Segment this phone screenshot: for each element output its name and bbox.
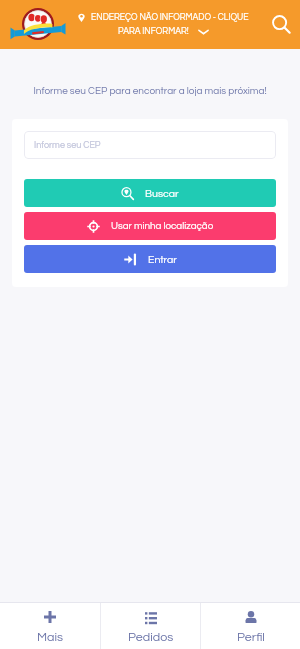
button[interactable]: Buscar [266,0,296,49]
button[interactable]: Entrar [24,245,276,273]
button[interactable]: Perfil [201,603,300,649]
button[interactable]: Buscar [24,179,276,207]
staticText: ENDEREÇO NÃO INFORMADO - CLIQUE [91,13,249,22]
staticText: Pedidos [128,631,174,644]
staticText: PARA INFORMAR! [118,27,189,36]
staticText: Perfil [237,631,265,644]
other: Dog Burger [22,8,54,40]
button[interactable]: Pedidos [101,603,200,649]
button[interactable]: Informe seu CEP [24,131,276,159]
button[interactable]: Usar minha localização [24,212,276,240]
staticText: Mais [37,631,64,644]
button[interactable]: ENDEREÇO NÃO INFORMADO - CLIQUE [78,13,249,36]
staticText: Informe seu CEP para encontrar a loja ma… [0,86,300,96]
staticText: Entrar [148,254,177,265]
staticText: Informe seu CEP [34,141,101,150]
staticText: Buscar [145,188,179,199]
button[interactable]: Mais [0,603,100,649]
staticText: Usar minha localização [111,221,214,231]
